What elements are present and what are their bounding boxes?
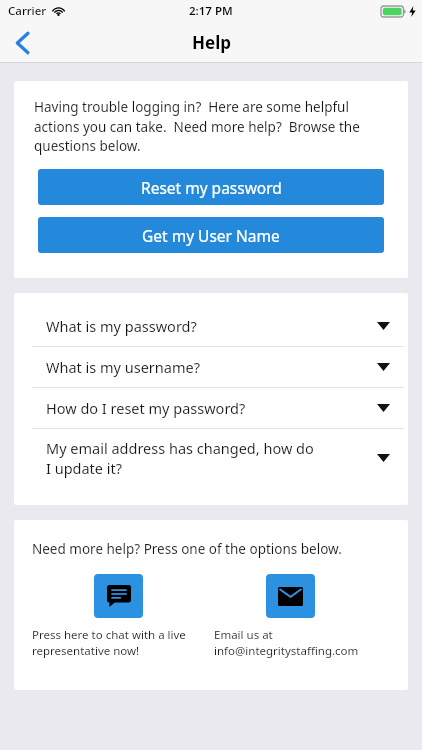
staticText: What is my username? (46, 357, 318, 377)
button[interactable]: Email us (214, 574, 384, 658)
staticText: What is my password? (46, 316, 318, 336)
button[interactable]: My email address has changed, how do I u… (14, 429, 408, 487)
button[interactable]: How do I reset my password? (14, 388, 408, 428)
button[interactable]: Chat with a live representative (32, 574, 210, 658)
button[interactable]: Get my User Name (38, 217, 384, 253)
staticText: Press here to chat with a live represent… (32, 627, 210, 658)
staticText: Reset my password (141, 177, 282, 198)
staticText: My email address has changed, how do I u… (46, 438, 318, 478)
staticText: Carrier (8, 3, 47, 19)
staticText: Get my User Name (142, 225, 280, 246)
staticText: 2:17 PM (189, 3, 233, 19)
staticText: How do I reset my password? (46, 398, 318, 418)
button[interactable]: Back (0, 22, 44, 63)
staticText: Help (192, 31, 231, 54)
staticText: Having trouble logging in? Here are some… (34, 98, 388, 155)
staticText: Email us at info@integritystaffing.com (214, 627, 384, 658)
button[interactable]: Reset my password (38, 169, 384, 205)
button[interactable]: What is my password? (14, 306, 408, 346)
button[interactable]: What is my username? (14, 347, 408, 387)
staticText: Need more help? Press one of the options… (32, 540, 342, 558)
